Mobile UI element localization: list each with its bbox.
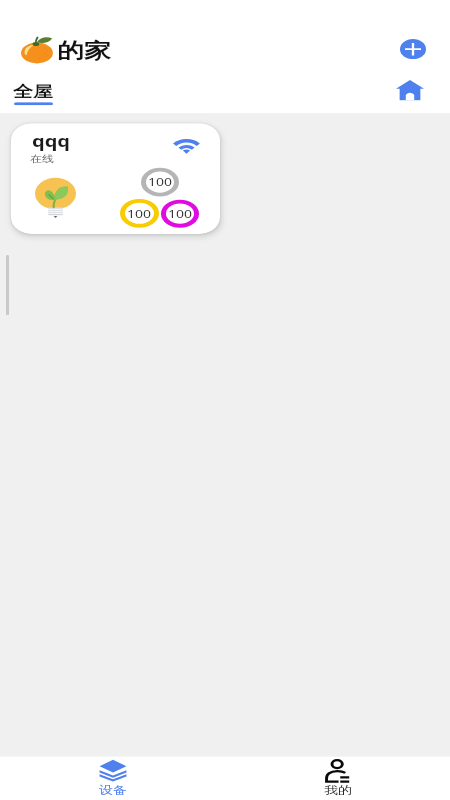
staticText: 100 [168,207,193,221]
staticText: 100 [127,206,152,221]
staticText: 100 [148,175,173,189]
staticText: 设备 [99,784,127,798]
button[interactable]: qqq [11,123,220,234]
button[interactable]: 我的 [225,757,450,800]
button[interactable]: 全屋 [13,78,59,109]
other: Wi-Fi connected [167,134,205,158]
staticText: 我的 [324,784,352,798]
staticText: 在线 [30,153,54,165]
staticText: qqq [32,130,70,151]
staticText: 的家 [57,37,111,64]
staticText: 全屋 [13,82,53,101]
button[interactable]: Add device [400,39,426,59]
button[interactable]: Home [392,76,428,104]
button[interactable]: 设备 [0,757,225,800]
